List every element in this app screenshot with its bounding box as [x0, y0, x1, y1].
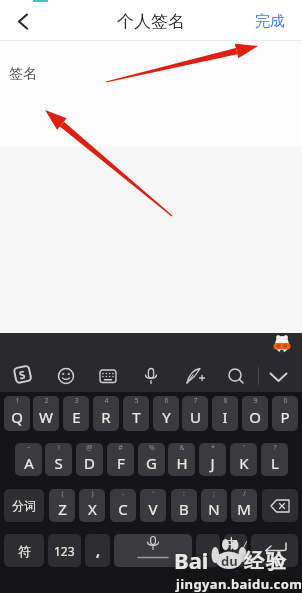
staticText: L: [271, 453, 279, 473]
staticText: ': [243, 443, 245, 453]
button[interactable]: 6: [153, 396, 179, 431]
staticText: 0: [283, 396, 288, 406]
staticText: jingyan.baidu.com: [176, 575, 302, 593]
button[interactable]: 3: [63, 396, 89, 431]
staticText: U: [190, 407, 201, 427]
button[interactable]: (: [49, 489, 75, 522]
staticText: S: [54, 453, 63, 473]
button[interactable]: 7: [182, 396, 208, 431]
button[interactable]: [268, 368, 290, 386]
staticText: M: [237, 499, 251, 519]
button[interactable]: ': [230, 443, 257, 476]
staticText: Bai: [174, 545, 209, 575]
staticText: 6: [164, 396, 169, 406]
button[interactable]: [141, 366, 161, 386]
button[interactable]: @: [76, 443, 103, 476]
staticText: @: [86, 443, 93, 453]
staticText: 123: [54, 543, 75, 559]
staticText: H: [176, 453, 188, 473]
button[interactable]: 0: [272, 396, 298, 431]
button[interactable]: [262, 489, 298, 522]
staticText: Y: [162, 407, 171, 427]
button[interactable]: [251, 534, 298, 567]
staticText: 中: [225, 535, 238, 551]
staticText: #: [118, 443, 123, 453]
button[interactable]: 分词: [4, 489, 44, 522]
staticText: 2: [44, 396, 49, 406]
staticText: O: [249, 407, 261, 427]
button[interactable]: 9: [242, 396, 268, 431]
staticText: 经验: [243, 549, 287, 574]
button[interactable]: 中: [224, 534, 247, 567]
staticText: ~: [26, 443, 31, 453]
staticText: R: [101, 407, 111, 427]
button[interactable]: #: [107, 443, 134, 476]
staticText: I: [222, 407, 228, 427]
button[interactable]: &: [168, 443, 195, 476]
staticText: C: [118, 499, 128, 519]
button[interactable]: 5: [123, 396, 149, 431]
staticText: B: [179, 499, 189, 519]
staticText: 。: [202, 543, 215, 559]
staticText: X: [88, 499, 97, 519]
staticText: :: [183, 489, 185, 499]
staticText: J: [210, 453, 215, 473]
staticText: V: [148, 499, 158, 519]
staticText: 5: [134, 396, 139, 406]
button[interactable]: [183, 365, 205, 387]
button[interactable]: /: [231, 489, 257, 522]
button[interactable]: [226, 366, 246, 386]
staticText: %: [149, 443, 155, 453]
staticText: 9: [253, 396, 258, 406]
staticText: A: [24, 453, 34, 473]
staticText: T: [132, 407, 141, 427]
button[interactable]: ): [79, 489, 105, 522]
staticText: W: [39, 407, 53, 427]
button[interactable]: 2: [33, 396, 59, 431]
button[interactable]: [98, 366, 118, 386]
staticText: 1: [15, 396, 20, 406]
button[interactable]: ?: [261, 443, 288, 476]
staticText: 分词: [12, 498, 36, 513]
staticText: N: [208, 499, 220, 519]
button[interactable]: ~: [15, 443, 42, 476]
button[interactable]: ': [140, 489, 166, 522]
button[interactable]: 符: [4, 534, 44, 567]
button[interactable]: 123: [48, 534, 81, 567]
staticText: ,: [96, 541, 100, 560]
button[interactable]: 1: [4, 396, 30, 431]
staticText: *: [211, 443, 215, 453]
button[interactable]: -: [110, 489, 136, 522]
button[interactable]: [56, 366, 76, 386]
button[interactable]: %: [138, 443, 165, 476]
staticText: ;: [213, 489, 215, 499]
staticText: F: [117, 453, 125, 473]
staticText: du: [221, 552, 238, 570]
button[interactable]: *: [199, 443, 226, 476]
staticText: ': [152, 489, 154, 499]
button[interactable]: 。: [196, 534, 220, 567]
button[interactable]: 完成: [248, 8, 292, 34]
button[interactable]: 4: [93, 396, 119, 431]
button[interactable]: ,: [85, 534, 110, 567]
staticText: Q: [11, 407, 23, 427]
staticText: 4: [104, 396, 109, 406]
staticText: 个人签名: [0, 11, 302, 32]
staticText: G: [146, 453, 157, 473]
staticText: Z: [58, 499, 67, 519]
button[interactable]: [114, 534, 192, 567]
staticText: &: [179, 443, 185, 453]
staticText: E: [72, 407, 81, 427]
staticText: !: [58, 443, 60, 453]
button[interactable]: S: [10, 362, 34, 386]
button[interactable]: [8, 7, 38, 35]
staticText: 7: [193, 396, 198, 406]
staticText: 8: [223, 396, 228, 406]
button[interactable]: :: [171, 489, 197, 522]
button[interactable]: 签名: [0, 41, 302, 146]
staticText: -: [122, 489, 125, 499]
button[interactable]: ;: [201, 489, 227, 522]
button[interactable]: !: [45, 443, 72, 476]
button[interactable]: 8: [212, 396, 238, 431]
staticText: D: [84, 453, 95, 473]
